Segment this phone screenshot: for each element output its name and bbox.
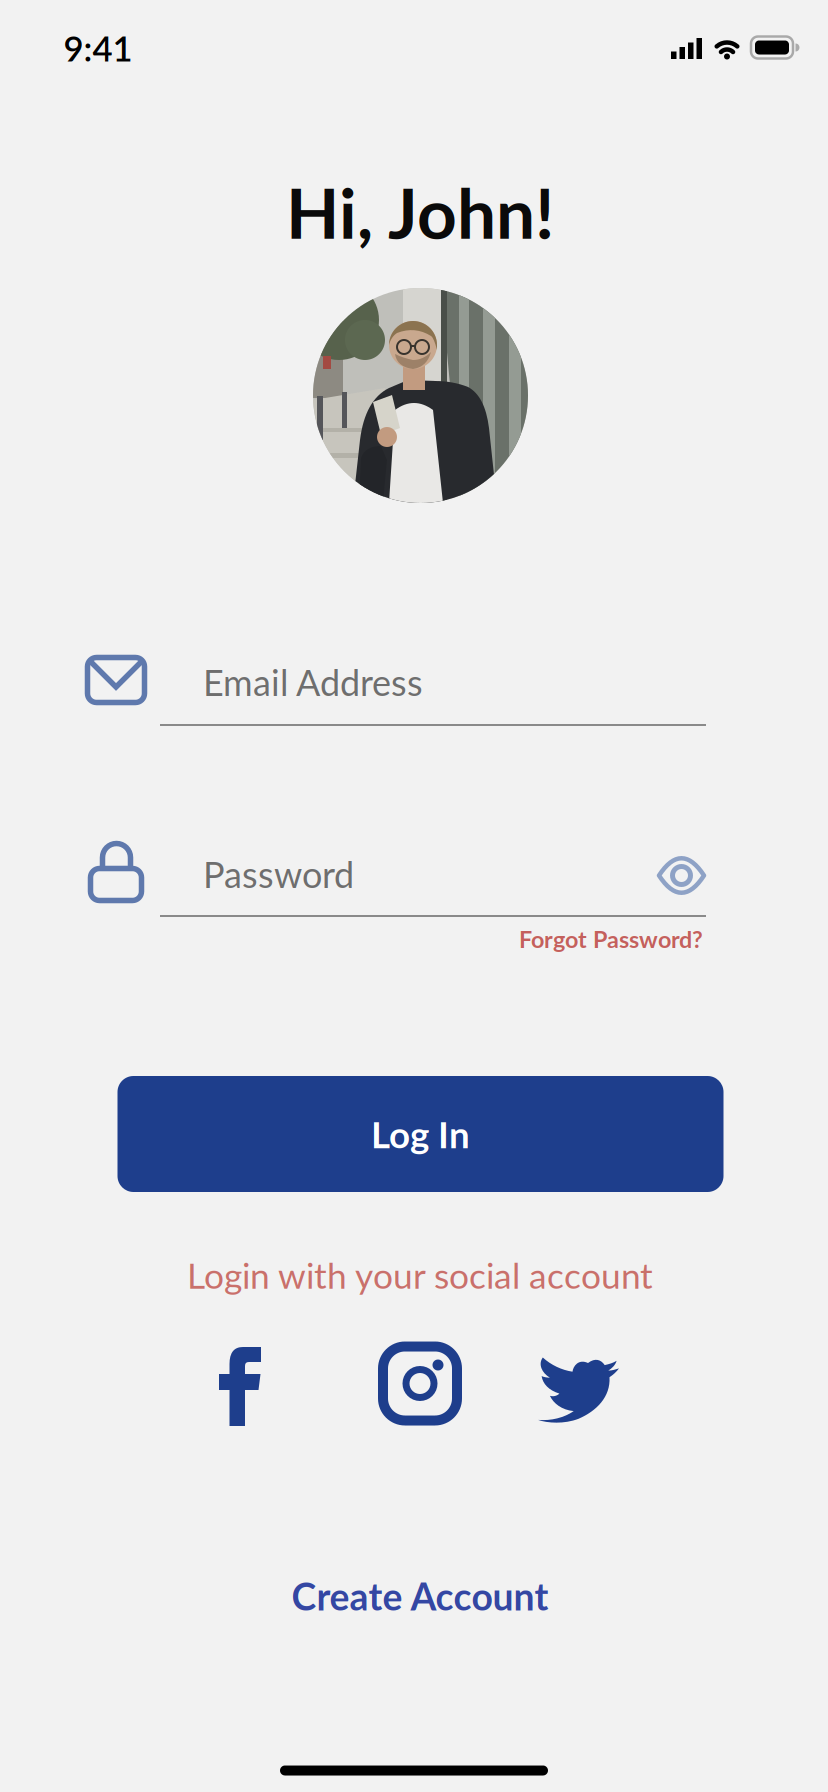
staticText: Hi, John! (286, 170, 554, 254)
button[interactable]: Create Account (291, 1574, 548, 1618)
staticText: Forgot Password? (519, 925, 703, 953)
button[interactable]: Show password (651, 850, 711, 900)
staticText: Log In (371, 1112, 470, 1156)
button[interactable]: Login with Twitter (533, 1346, 623, 1426)
staticText: 9:41 (63, 27, 132, 69)
staticText: Password (203, 852, 354, 896)
button[interactable]: Login with Facebook (210, 1341, 270, 1431)
button[interactable]: Login with Instagram (375, 1338, 465, 1428)
button[interactable]: Forgot Password? (303, 925, 703, 953)
staticText: Login with your social account (187, 1254, 653, 1296)
button[interactable]: Log In (117, 1076, 723, 1192)
staticText: Create Account (291, 1574, 548, 1618)
staticText: Email Address (203, 660, 423, 704)
